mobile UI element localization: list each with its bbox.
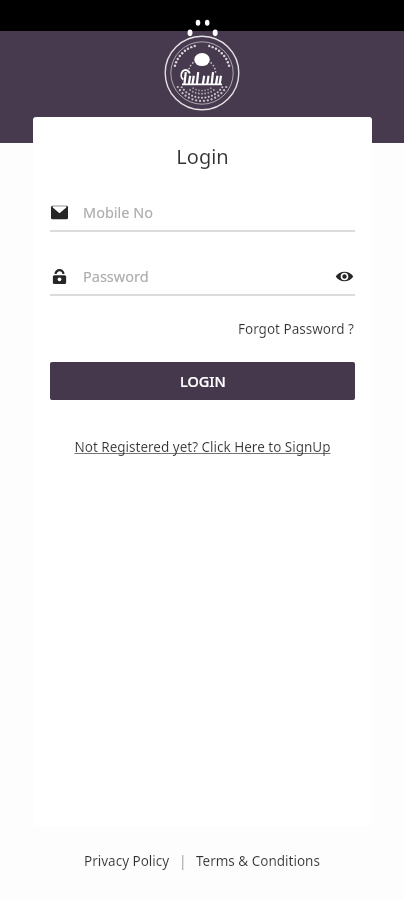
staticText: Terms & Conditions	[196, 852, 320, 870]
other: Pet Guru logo	[162, 33, 242, 113]
button[interactable]: LOGIN	[50, 362, 355, 400]
staticText: Password	[83, 266, 333, 286]
button[interactable]: Terms & Conditions	[192, 848, 324, 874]
staticText: Not Registered yet? Click Here to SignUp	[63, 438, 342, 456]
staticText: Login	[33, 143, 372, 170]
button[interactable]: Password	[50, 263, 355, 296]
staticText: LOGIN	[180, 371, 226, 391]
other: Mobile number	[51, 204, 68, 221]
button[interactable]: Forgot Password ?	[236, 316, 356, 342]
staticText: |	[179, 852, 187, 870]
button[interactable]: Not Registered yet? Click Here to SignUp	[33, 436, 372, 458]
button[interactable]: Mobile number	[50, 199, 355, 232]
staticText: Privacy Policy	[84, 852, 170, 870]
button[interactable]: Privacy Policy	[80, 848, 174, 874]
other: Password	[51, 268, 68, 285]
staticText: Forgot Password ?	[238, 320, 354, 338]
staticText: Mobile No	[83, 202, 355, 222]
button[interactable]: Show password	[333, 265, 355, 287]
